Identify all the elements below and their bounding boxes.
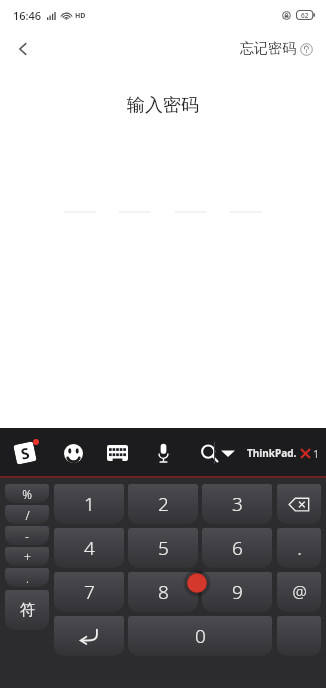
staticText: 忘记密码 [240, 40, 296, 58]
button[interactable]: 符 [5, 590, 49, 630]
button[interactable]: Hide keyboard [214, 439, 242, 467]
staticText: . [297, 535, 302, 561]
button[interactable]: % [5, 484, 49, 503]
button[interactable]: Backspace [277, 484, 321, 524]
button[interactable]: 2 [128, 484, 198, 524]
button[interactable]: . [277, 528, 321, 568]
staticText: 3 [232, 491, 243, 517]
button[interactable]: 1 [54, 484, 124, 524]
button[interactable]: + [5, 547, 49, 566]
staticText: . [26, 570, 29, 586]
staticText: - [25, 528, 29, 544]
button[interactable]: 7 [54, 572, 124, 612]
staticText: 9 [232, 579, 243, 605]
staticText: 6 [232, 535, 243, 561]
staticText: ThinkPad. [247, 446, 297, 460]
staticText: 1 [84, 491, 95, 517]
staticText: 符 [20, 601, 35, 620]
button[interactable]: 4 [54, 528, 124, 568]
button[interactable]: Search [194, 438, 224, 468]
staticText: HD [75, 11, 86, 21]
button[interactable]: Voice input [148, 438, 178, 468]
button[interactable]: Sogou input method [10, 438, 40, 468]
staticText: % [22, 486, 32, 502]
staticText: S [19, 442, 32, 464]
button[interactable]: / [5, 505, 49, 524]
staticText: 1 [313, 446, 320, 461]
staticText: 62 [301, 11, 309, 20]
button[interactable]: . [5, 568, 49, 587]
button[interactable]: 6 [202, 528, 272, 568]
button[interactable]: 8 [128, 572, 198, 612]
button[interactable]: - [5, 526, 49, 545]
button[interactable]: 3 [202, 484, 272, 524]
button[interactable]: Enter [54, 616, 124, 656]
staticText: / [25, 507, 30, 523]
staticText: 2 [158, 491, 169, 517]
staticText: 0 [195, 623, 206, 649]
staticText: 7 [84, 579, 95, 605]
button[interactable]: Emoji [58, 438, 88, 468]
button[interactable]: Back [5, 31, 41, 67]
staticText: 16:46 [13, 8, 42, 23]
staticText: 输入密码 [127, 94, 199, 117]
staticText: 8 [158, 579, 169, 605]
button[interactable]: @ [277, 572, 321, 612]
staticText: + [24, 549, 31, 565]
button[interactable]: 忘记密码 [236, 36, 317, 62]
staticText: @ [292, 581, 307, 603]
button[interactable]: Switch keyboard [102, 438, 132, 468]
staticText: 4 [84, 535, 95, 561]
button[interactable]: 5 [128, 528, 198, 568]
button[interactable]: 9 [202, 572, 272, 612]
button[interactable]: 0 [128, 616, 272, 656]
staticText: 5 [158, 535, 169, 561]
button[interactable]: More options [277, 616, 321, 656]
